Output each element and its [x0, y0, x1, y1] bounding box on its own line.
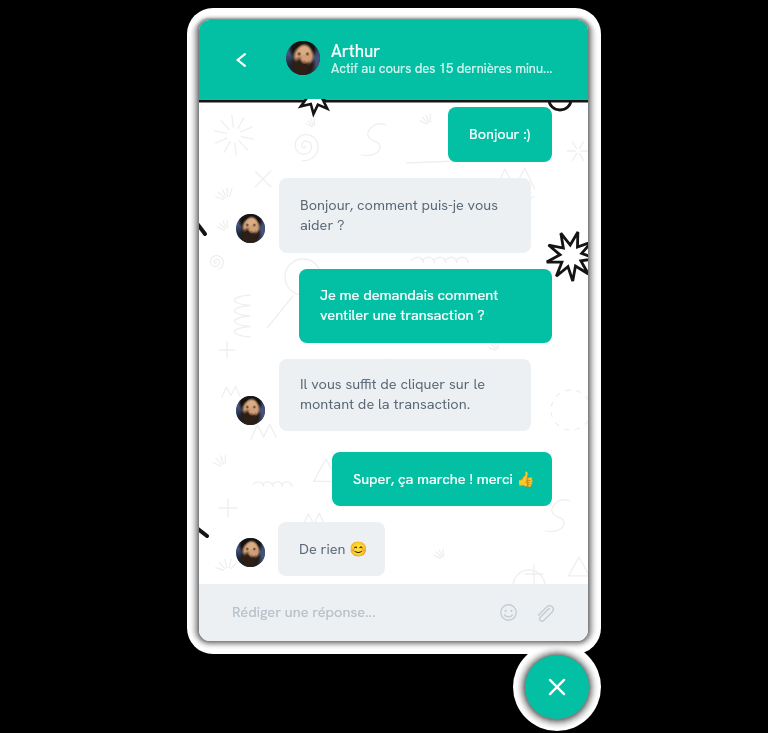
button[interactable]: Back	[219, 20, 263, 99]
staticText: De rien 😊	[299, 539, 368, 558]
button[interactable]: Il vous suffit de cliquer sur le montant…	[279, 359, 531, 431]
button[interactable]: De rien 😊	[278, 522, 385, 576]
staticText: Il vous suffit de cliquer sur le montant…	[300, 374, 486, 414]
staticText: Arthur	[331, 40, 381, 62]
button[interactable]: Arthur	[279, 20, 579, 99]
button[interactable]: Rédiger une réponse...	[213, 584, 483, 641]
staticText: Bonjour :)	[469, 124, 530, 143]
button[interactable]: Bonjour, comment puis-je vous aider ?	[279, 178, 531, 253]
button[interactable]: Je me demandais comment ventiler une tra…	[299, 269, 552, 343]
staticText: Je me demandais comment ventiler une tra…	[320, 285, 499, 325]
button[interactable]: Emoji	[494, 598, 522, 626]
staticText: Actif au cours des 15 dernières minu...	[331, 60, 553, 77]
button[interactable]: Super, ça marche ! merci 👍	[332, 452, 552, 506]
staticText: Super, ça marche ! merci 👍	[353, 469, 535, 488]
staticText: Bonjour, comment puis-je vous aider ?	[300, 195, 499, 235]
staticText: Rédiger une réponse...	[232, 602, 376, 621]
button[interactable]: Attach file	[530, 598, 558, 626]
button[interactable]: Close chat	[525, 655, 589, 719]
button[interactable]: Bonjour :)	[448, 107, 552, 162]
